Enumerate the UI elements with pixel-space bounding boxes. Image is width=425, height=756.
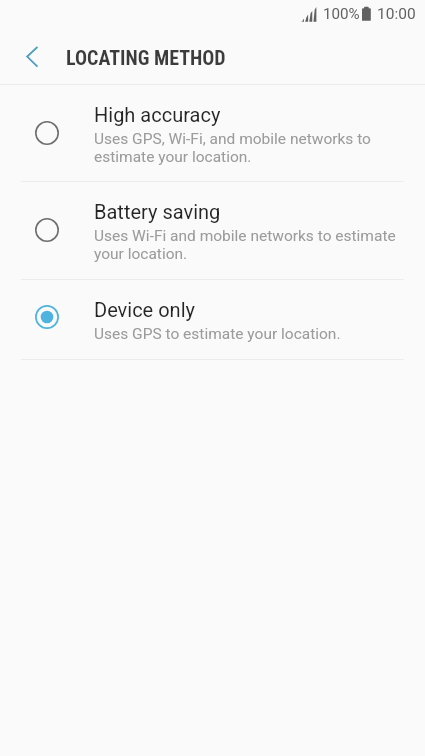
staticText: Device only xyxy=(94,298,195,321)
staticText: High accuracy xyxy=(94,103,221,126)
staticText: Uses GPS, Wi-Fi, and mobile networks to … xyxy=(94,130,404,166)
staticText: Uses Wi-Fi and mobile networks to estima… xyxy=(94,227,404,263)
button[interactable]: High accuracy xyxy=(0,85,425,181)
button[interactable]: Device only xyxy=(0,280,425,359)
staticText: 10:00 xyxy=(377,5,416,23)
staticText: 100% xyxy=(323,5,360,23)
button[interactable]: Battery saving xyxy=(0,182,425,279)
button[interactable]: Navigate up xyxy=(8,32,56,80)
staticText: Battery saving xyxy=(94,200,221,223)
staticText: Uses GPS to estimate your location. xyxy=(94,325,341,343)
staticText: LOCATING METHOD xyxy=(66,46,226,69)
